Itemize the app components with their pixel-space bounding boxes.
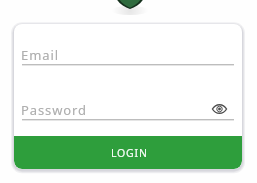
staticText: Password [21, 101, 87, 119]
staticText: LOGIN [111, 146, 148, 160]
button[interactable]: LOGIN [14, 136, 242, 169]
staticText: Email [21, 46, 59, 64]
button[interactable]: Show password [210, 100, 228, 118]
